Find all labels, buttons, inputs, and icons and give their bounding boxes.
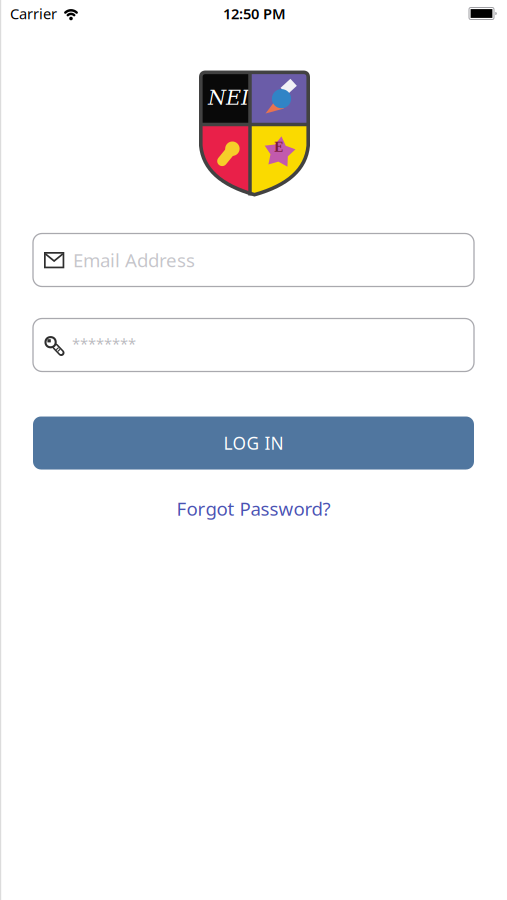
- button[interactable]: Forgot Password?: [176, 496, 330, 521]
- staticText: Forgot Password?: [176, 496, 330, 521]
- staticText: LOG IN: [223, 431, 283, 454]
- button[interactable]: LOG IN: [33, 416, 474, 469]
- staticText: Email Address: [73, 248, 195, 272]
- button[interactable]: Password: [33, 318, 474, 371]
- staticText: NEI: [208, 85, 249, 110]
- staticText: 12:50 PM: [223, 4, 286, 23]
- button[interactable]: Email Address: [33, 233, 474, 286]
- staticText: E: [274, 140, 283, 155]
- staticText: ********: [72, 334, 136, 353]
- staticText: Carrier: [10, 4, 57, 23]
